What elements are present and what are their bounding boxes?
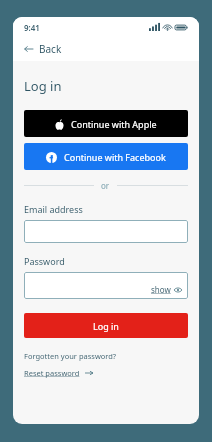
button[interactable]: Back bbox=[13, 37, 199, 61]
other: Show password bbox=[174, 287, 182, 293]
button[interactable]: Reset password bbox=[24, 368, 93, 378]
staticText: Back bbox=[39, 42, 62, 56]
staticText: Email address bbox=[24, 203, 83, 215]
button[interactable] bbox=[24, 220, 188, 243]
staticText: Continue with Facebook bbox=[64, 151, 166, 163]
button[interactable]: Apple bbox=[24, 110, 188, 137]
staticText: 9:41 bbox=[24, 22, 40, 33]
button[interactable]: Facebook bbox=[24, 143, 188, 170]
other: Apple bbox=[55, 119, 64, 130]
button[interactable]: show bbox=[151, 284, 188, 299]
staticText: show bbox=[151, 284, 171, 295]
button[interactable]: Log in bbox=[24, 313, 188, 338]
staticText: or bbox=[101, 180, 110, 191]
staticText: Continue with Apple bbox=[71, 118, 157, 130]
staticText: Reset password bbox=[24, 368, 80, 378]
staticText: Log in bbox=[93, 320, 119, 332]
staticText: Log in bbox=[24, 77, 62, 95]
staticText: Password bbox=[24, 255, 65, 267]
other: Facebook bbox=[46, 152, 57, 163]
staticText: Forgotten your password? bbox=[24, 351, 117, 361]
